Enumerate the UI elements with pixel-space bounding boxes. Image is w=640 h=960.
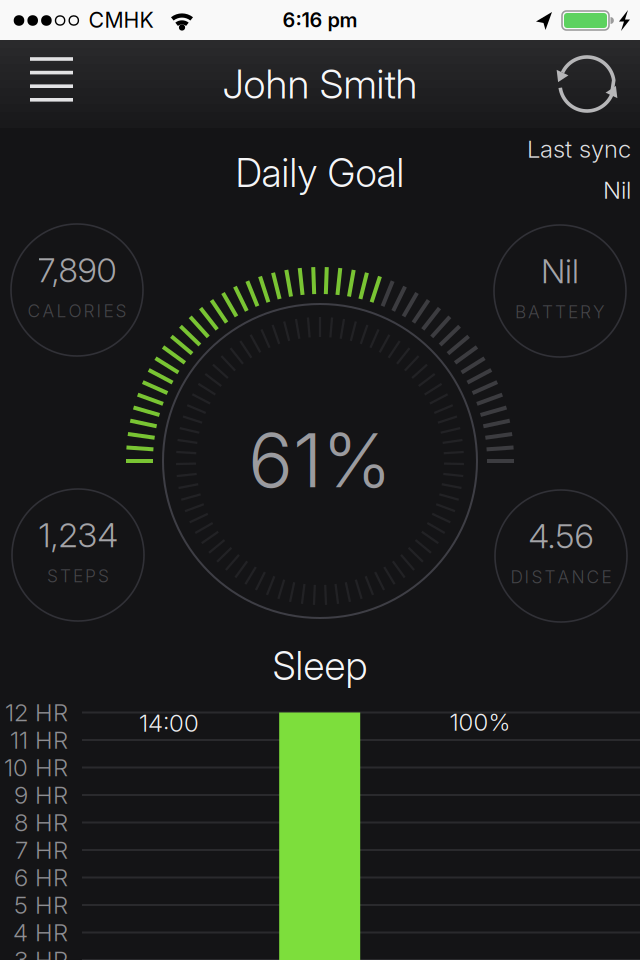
staticText: 5 HR: [14, 891, 68, 919]
staticText: 6 HR: [14, 863, 68, 892]
staticText: Nil: [541, 251, 579, 291]
staticText: 7,890: [37, 250, 116, 290]
staticText: CMHK: [88, 7, 153, 33]
button[interactable]: Menu: [20, 50, 84, 114]
staticText: 11 HR: [10, 726, 68, 754]
staticText: 7 HR: [15, 836, 68, 864]
staticText: 14:00: [139, 709, 199, 737]
staticText: John Smith: [222, 60, 417, 108]
staticText: 4 HR: [13, 918, 68, 947]
staticText: 9 HR: [14, 781, 68, 809]
staticText: Sleep: [272, 643, 367, 689]
button[interactable]: Sync: [549, 46, 625, 122]
staticText: 10 HR: [4, 753, 68, 782]
staticText: Nil: [603, 176, 631, 204]
staticText: 4.56: [528, 516, 593, 556]
staticText: S T E P S: [47, 566, 109, 586]
staticText: Daily Goal: [235, 150, 404, 196]
staticText: 61%: [248, 416, 392, 504]
staticText: 6:16 pm: [282, 8, 357, 32]
staticText: Last sync: [527, 135, 631, 163]
staticText: B A T T E R Y: [515, 302, 605, 322]
staticText: 12 HR: [5, 698, 68, 727]
staticText: D I S T A N C E: [510, 567, 611, 587]
staticText: C A L O R I E S: [27, 301, 126, 321]
staticText: 1,234: [38, 515, 117, 555]
staticText: 8 HR: [14, 808, 68, 837]
staticText: 100%: [449, 708, 510, 736]
staticText: 3 HR: [14, 946, 68, 960]
